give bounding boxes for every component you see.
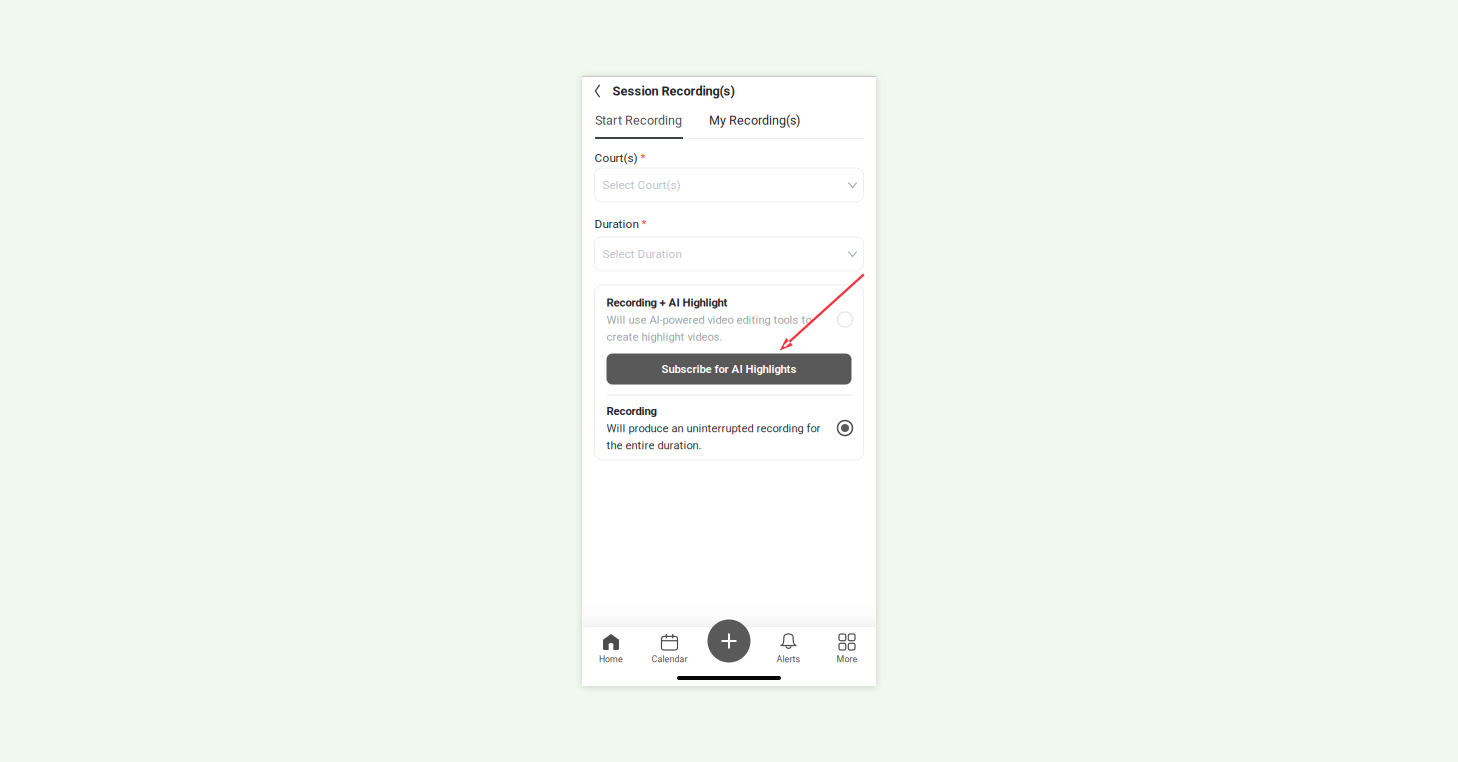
staticText: * — [641, 217, 646, 230]
button[interactable]: Back — [584, 78, 610, 104]
staticText: Select Duration — [602, 247, 681, 261]
button[interactable]: Home — [582, 634, 640, 668]
staticText: My Recording(s) — [709, 113, 800, 128]
button[interactable]: Alerts — [759, 634, 818, 668]
staticText: Calendar — [651, 654, 687, 664]
staticText: Session Recording(s) — [612, 83, 734, 98]
button[interactable]: Recording + AI Highlight — [594, 285, 863, 343]
button[interactable]: Recording — [594, 395, 863, 460]
button[interactable]: More — [818, 634, 876, 668]
staticText: Home — [599, 654, 623, 664]
staticText: Alerts — [776, 654, 800, 664]
staticText: Duration — [594, 217, 638, 231]
staticText: create highlight videos. — [606, 330, 722, 343]
button[interactable]: Start Recording — [595, 112, 683, 129]
staticText: Start Recording — [595, 113, 682, 128]
button[interactable]: My Recording(s) — [709, 112, 803, 129]
staticText: More — [836, 654, 857, 664]
button[interactable]: Select Court(s) — [594, 168, 863, 202]
staticText: Court(s) — [594, 151, 637, 165]
button[interactable]: Calendar — [640, 634, 699, 668]
staticText: Select Court(s) — [602, 178, 680, 192]
staticText: Subscribe for AI Highlights — [661, 362, 796, 376]
button[interactable]: Subscribe for AI Highlights — [606, 353, 851, 384]
staticText: Will produce an uninterrupted recording … — [606, 422, 820, 435]
staticText: Will use AI-powered video editing tools … — [606, 313, 811, 326]
staticText: Recording + AI Highlight — [606, 296, 727, 309]
staticText: the entire duration. — [606, 439, 701, 452]
staticText: * — [640, 151, 645, 164]
button[interactable]: Create — [707, 619, 750, 662]
staticText: Recording — [606, 404, 656, 418]
button[interactable]: Select Duration — [594, 237, 863, 271]
